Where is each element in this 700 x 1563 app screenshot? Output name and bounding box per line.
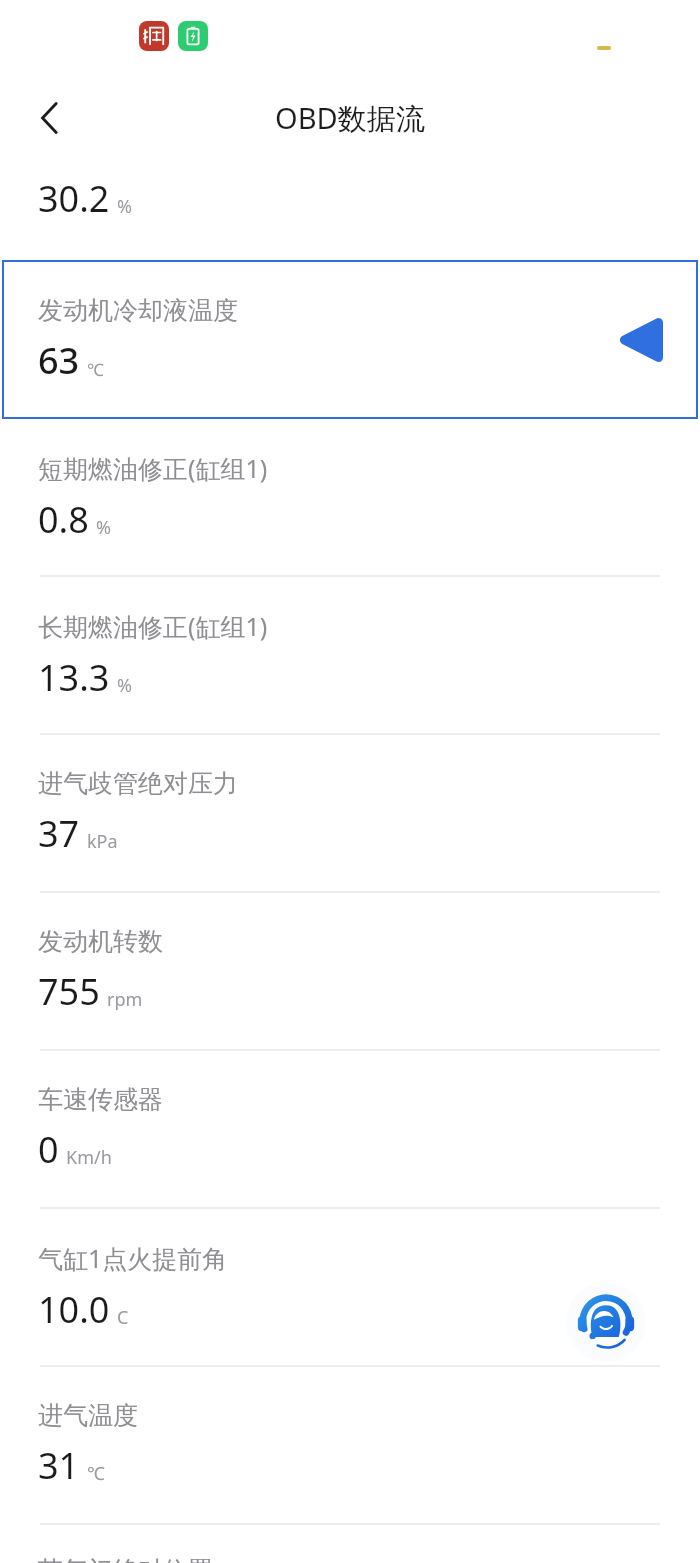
button[interactable]: 短期燃油修正(缸组1)	[0, 419, 700, 575]
staticText: ℃	[87, 1461, 105, 1486]
staticText: 30.2	[38, 174, 110, 223]
staticText: 车速传感器	[38, 1084, 163, 1115]
staticText: %	[117, 673, 132, 698]
staticText: 0.8	[38, 495, 89, 544]
button[interactable]: 长期燃油修正(缸组1)	[0, 577, 700, 733]
staticText: OBD数据流	[275, 98, 425, 138]
staticText: 进气歧管绝对压力	[38, 768, 238, 799]
button[interactable]: 节气门绝对位置	[0, 1525, 700, 1563]
button[interactable]: 进气温度	[0, 1367, 700, 1523]
button[interactable]: 进气歧管绝对压力	[0, 735, 700, 891]
staticText: Km/h	[66, 1145, 112, 1170]
staticText: 气缸1点火提前角	[38, 1241, 228, 1275]
staticText: 755	[38, 967, 100, 1016]
staticText: kPa	[87, 829, 118, 854]
staticText: 节气门绝对位置	[38, 1555, 213, 1563]
staticText: %	[96, 515, 111, 540]
staticText: 63	[38, 336, 80, 385]
button[interactable]: 车速传感器	[0, 1051, 700, 1207]
staticText: ℃	[87, 358, 104, 381]
staticText: 发动机冷却液温度	[38, 295, 238, 326]
staticText: %	[117, 194, 132, 219]
staticText: 长期燃油修正(缸组1)	[38, 609, 268, 643]
button[interactable]: 气缸1点火提前角	[0, 1209, 700, 1365]
button[interactable]: Customer service	[566, 1282, 646, 1362]
staticText: 37	[38, 809, 80, 858]
staticText: 31	[38, 1441, 80, 1490]
button[interactable]: 30.2	[0, 158, 700, 260]
button[interactable]: 发动机冷却液温度	[2, 260, 698, 419]
staticText: 0	[38, 1125, 59, 1174]
staticText: 10.0	[38, 1285, 110, 1334]
button[interactable]: Back	[18, 86, 82, 150]
staticText: C	[117, 1305, 129, 1330]
staticText: rpm	[107, 987, 143, 1012]
staticText: 短期燃油修正(缸组1)	[38, 451, 268, 485]
staticText: 13.3	[38, 653, 110, 702]
button[interactable]: Expand	[618, 317, 664, 363]
staticText: 发动机转数	[38, 926, 163, 957]
staticText: 进气温度	[38, 1400, 138, 1431]
button[interactable]: 发动机转数	[0, 893, 700, 1049]
